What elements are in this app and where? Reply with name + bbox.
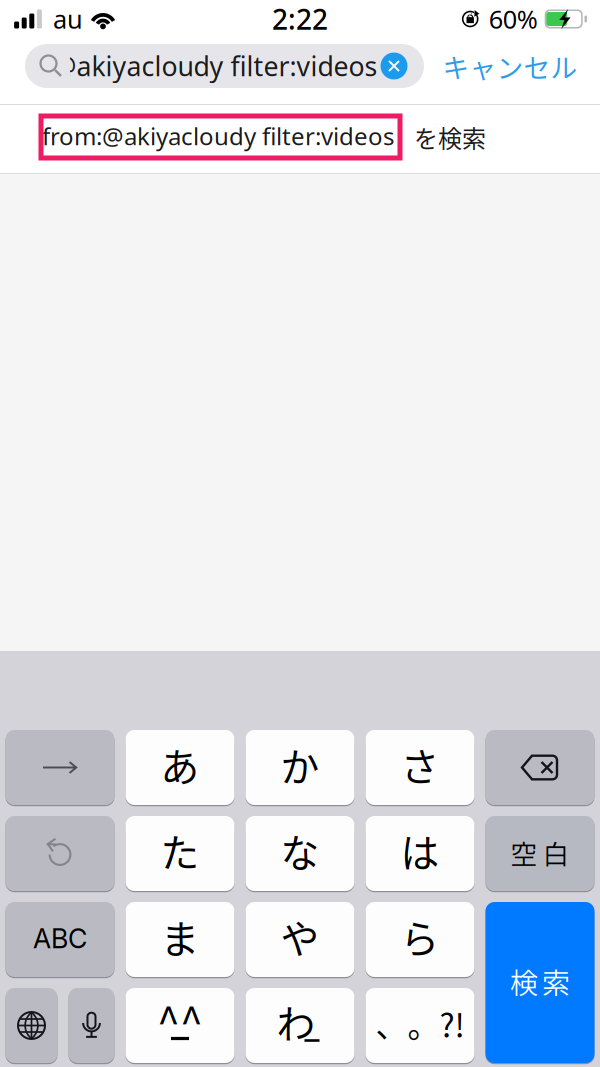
staticText: 2:22: [272, 0, 328, 38]
button[interactable]: ま: [125, 902, 234, 977]
button[interactable]: キャンセル: [437, 44, 582, 88]
staticText: ABC: [33, 922, 87, 955]
staticText: from:@akiyacloudy filter:videos: [42, 120, 394, 152]
button[interactable]: た: [125, 816, 234, 891]
staticText: を検索: [414, 120, 486, 154]
button[interactable]: Next candidate: [5, 730, 114, 805]
staticText: ら: [400, 908, 439, 964]
staticText: か: [280, 736, 319, 792]
button[interactable]: Clear search text: [380, 52, 407, 79]
staticText: さ: [400, 736, 439, 792]
button[interactable]: か: [245, 730, 354, 805]
button[interactable]: や: [245, 902, 354, 977]
button[interactable]: wa: [245, 988, 354, 1063]
button[interactable]: 、。?!: [365, 988, 474, 1063]
button[interactable]: @akiyacloudy filter:videos: [25, 44, 424, 88]
button[interactable]: Delete: [485, 730, 594, 805]
staticText: は: [400, 822, 439, 878]
button[interactable]: from:@akiyacloudy filter:videos: [0, 105, 600, 173]
button[interactable]: あ: [125, 730, 234, 805]
staticText: あ: [160, 736, 199, 792]
staticText: キャンセル: [442, 47, 577, 85]
staticText: た: [160, 822, 199, 878]
staticText: わ: [276, 993, 315, 1049]
staticText: 空白: [510, 833, 569, 872]
button[interactable]: さ: [365, 730, 474, 805]
button[interactable]: Dictation: [68, 988, 114, 1063]
button[interactable]: 空白: [485, 816, 594, 891]
staticText: 60%: [489, 2, 538, 36]
staticText: 検索: [510, 961, 570, 1002]
staticText: や: [280, 908, 319, 964]
staticText: な: [280, 822, 319, 878]
staticText: ま: [160, 908, 199, 964]
button[interactable]: ら: [365, 902, 474, 977]
staticText: au: [53, 2, 83, 36]
staticText: @akiyacloudy filter:videos: [52, 48, 377, 84]
staticText: ^^: [157, 990, 203, 1049]
button[interactable]: ABC: [5, 902, 114, 977]
button[interactable]: Emoticons: [125, 988, 234, 1063]
button[interactable]: 検索: [485, 902, 594, 1063]
button[interactable]: Switch keyboard: [5, 988, 57, 1063]
button[interactable]: は: [365, 816, 474, 891]
button[interactable]: な: [245, 816, 354, 891]
button[interactable]: Undo: [5, 816, 114, 891]
staticText: 、。?!: [375, 1000, 464, 1047]
